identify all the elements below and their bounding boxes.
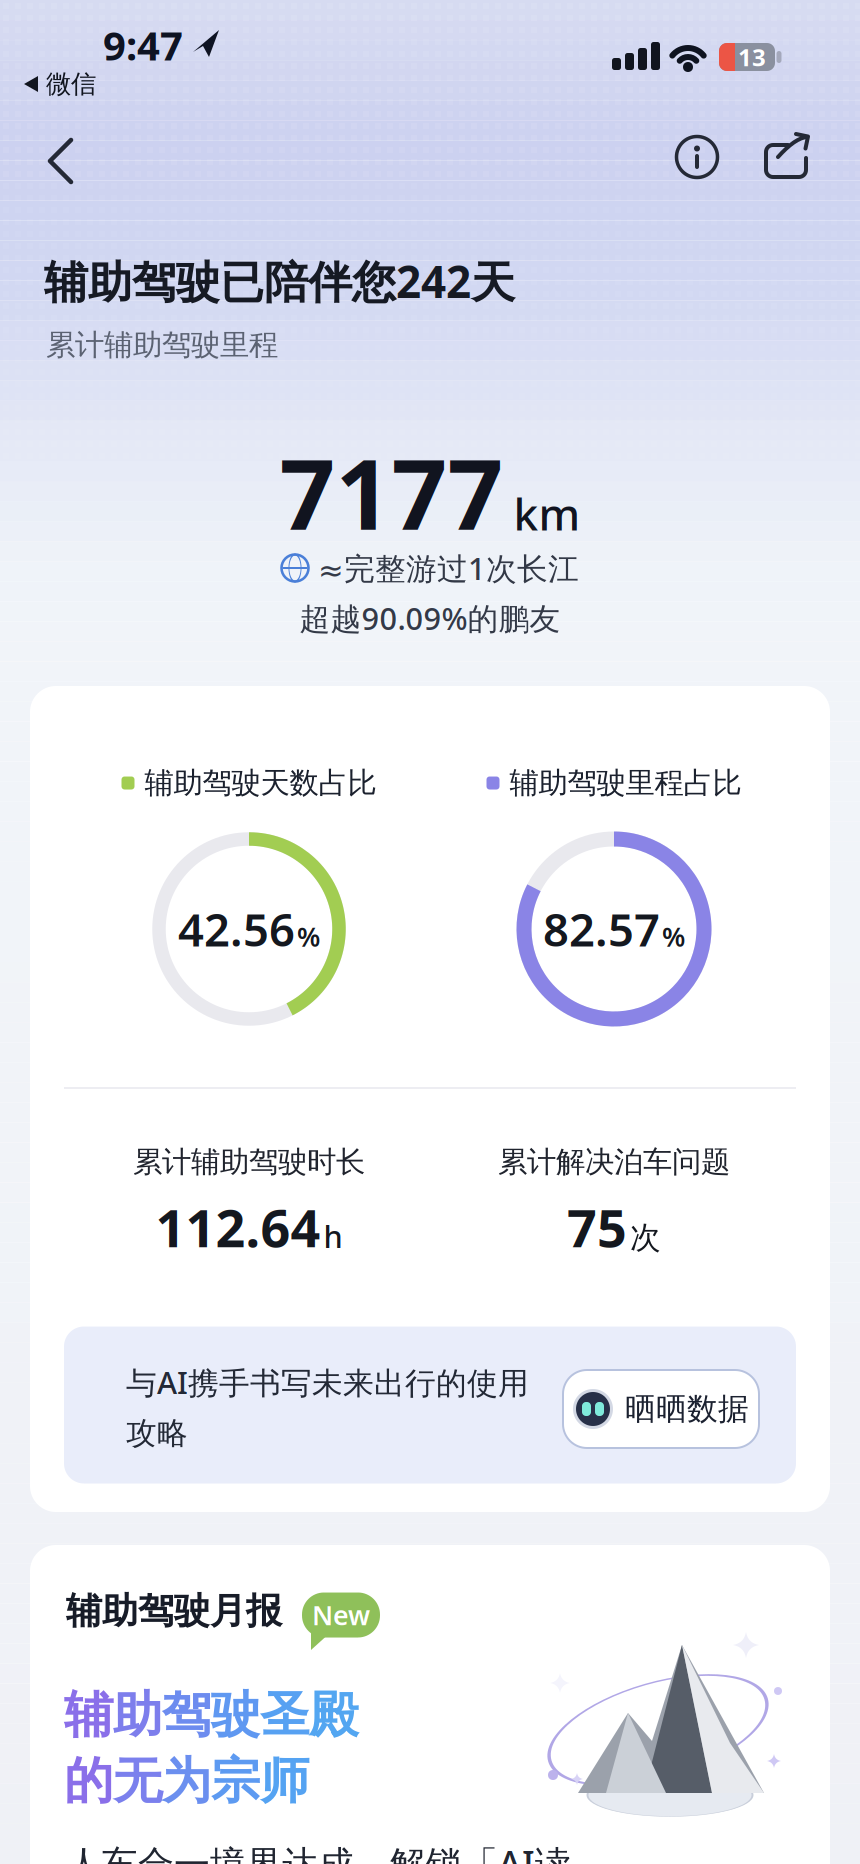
button[interactable]: Back xyxy=(41,132,101,190)
button[interactable]: Share xyxy=(760,132,812,182)
staticText: New xyxy=(312,1597,370,1633)
staticText: 辅助驾驶已陪伴您242天 xyxy=(44,252,515,310)
staticText: 9:47 xyxy=(103,18,183,71)
staticText: 驶 xyxy=(211,1685,260,1745)
staticText: 殿 xyxy=(309,1685,358,1745)
staticText: 112.64 xyxy=(155,1192,320,1262)
staticText: 82.57 xyxy=(543,899,660,959)
staticText: 辅助驾驶里程占比 xyxy=(509,765,741,801)
staticText: 超越90.09%的鹏友 xyxy=(299,598,560,638)
staticText: 为 xyxy=(162,1751,211,1811)
staticText: 助 xyxy=(113,1685,162,1745)
staticText: 13 xyxy=(738,41,766,73)
staticText: 师 xyxy=(260,1751,309,1811)
staticText: 晒晒数据 xyxy=(625,1390,749,1428)
staticText: 累计辅助驾驶里程 xyxy=(46,327,278,363)
staticText: % xyxy=(662,919,685,954)
staticText: 75 xyxy=(567,1192,627,1262)
staticText: 累计解决泊车问题 xyxy=(498,1144,730,1180)
staticText: km xyxy=(513,484,580,543)
staticText: 辅助驾驶天数占比 xyxy=(144,765,376,801)
button[interactable]: 辅助驾驶月报 xyxy=(30,1545,830,1864)
staticText: 宗 xyxy=(211,1751,260,1811)
staticText: 人车合一境界达成，解锁「AI读 xyxy=(66,1839,571,1864)
staticText: 攻略 xyxy=(126,1414,188,1452)
staticText: 辅助驾驶月报 xyxy=(66,1589,282,1633)
staticText: 42.56 xyxy=(178,899,295,959)
staticText: % xyxy=(297,919,320,954)
staticText: 的 xyxy=(64,1751,113,1811)
staticText: 与AI携手书写未来出行的使用 xyxy=(126,1362,529,1402)
staticText: 无 xyxy=(113,1751,162,1811)
staticText: h xyxy=(323,1216,342,1256)
staticText: 次 xyxy=(630,1219,661,1257)
staticText: ≈完整游过1次长江 xyxy=(318,548,579,588)
staticText: 微信 xyxy=(46,68,96,99)
button[interactable]: 晒晒数据 xyxy=(563,1370,759,1448)
staticText: 圣 xyxy=(260,1685,309,1745)
staticText: 辅 xyxy=(64,1685,113,1745)
staticText: 累计辅助驾驶时长 xyxy=(133,1144,365,1180)
button[interactable]: Info xyxy=(671,131,723,183)
staticText: 7177 xyxy=(279,427,503,557)
staticText: 驾 xyxy=(162,1685,211,1745)
